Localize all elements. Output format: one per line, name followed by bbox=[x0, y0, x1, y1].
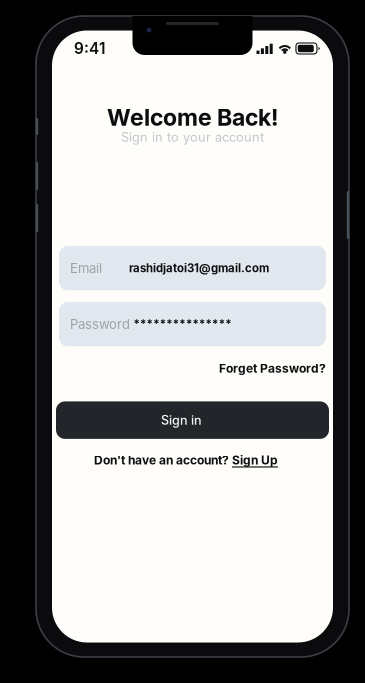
staticText: rashidjatoi31@gmail.com bbox=[129, 261, 269, 275]
staticText: Email bbox=[70, 260, 102, 276]
staticText: Welcome Back! bbox=[107, 103, 278, 131]
staticText: *************** bbox=[133, 317, 231, 331]
staticText: Sign in bbox=[161, 413, 202, 428]
staticText: Forget Password? bbox=[219, 361, 326, 376]
button[interactable]: Forget Password? bbox=[52, 361, 333, 375]
staticText: Sign Up bbox=[232, 453, 278, 467]
button[interactable]: Sign Up bbox=[232, 453, 278, 467]
button[interactable]: Sign in bbox=[56, 401, 329, 439]
staticText: Don't have an account? bbox=[94, 453, 232, 467]
staticText: Sign in to your account bbox=[121, 129, 264, 145]
staticText: Password bbox=[70, 316, 130, 332]
staticText: 9:41 bbox=[74, 39, 105, 58]
